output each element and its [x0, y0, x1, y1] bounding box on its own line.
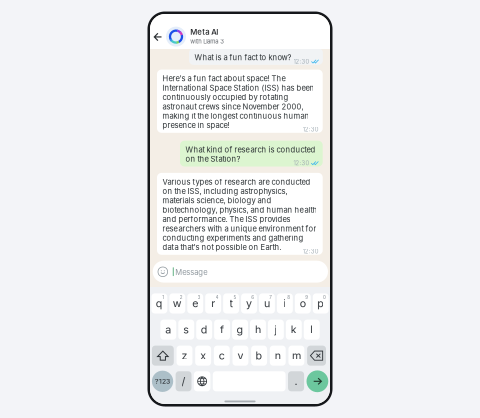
staticText: 2 [180, 295, 183, 300]
staticText: w [173, 297, 182, 310]
button[interactable]: r [205, 293, 221, 313]
button[interactable]: d [196, 320, 212, 340]
staticText: 12:30 [294, 58, 310, 65]
staticText: d [201, 323, 208, 336]
button[interactable]: h [250, 320, 266, 340]
button[interactable]: l [304, 320, 320, 340]
button[interactable]: x [195, 346, 211, 366]
button[interactable]: j [268, 320, 284, 340]
button[interactable]: Meta AI [150, 14, 330, 49]
button[interactable]: v [232, 346, 248, 366]
staticText: a [165, 323, 171, 336]
staticText: presence in space! [162, 121, 229, 130]
staticText: Here's a fun fact about space! The [162, 74, 285, 83]
button[interactable]: Send [306, 370, 328, 392]
staticText: materials science, biology and [162, 196, 271, 205]
button[interactable]: n [270, 346, 286, 366]
staticText: j [274, 323, 277, 336]
staticText: ?123 [155, 377, 170, 385]
staticText: 6 [251, 295, 254, 300]
staticText: s [183, 323, 189, 336]
staticText: m [292, 349, 301, 362]
staticText: v [237, 349, 243, 362]
button[interactable]: a [160, 320, 176, 340]
staticText: What kind of research is conducted [185, 145, 315, 154]
staticText: x [200, 349, 206, 362]
staticText: e [192, 297, 198, 310]
button[interactable]: y [241, 293, 257, 313]
button[interactable]: i [277, 293, 293, 313]
staticText: International Space Station (ISS) has be… [162, 83, 314, 92]
staticText: 3 [198, 295, 201, 300]
staticText: 8 [287, 295, 290, 300]
staticText: Meta AI [190, 27, 218, 37]
staticText: g [236, 323, 243, 336]
staticText: 1 [162, 295, 164, 300]
staticText: astronaut crews since November 2000, [162, 102, 303, 111]
button[interactable]: . [288, 371, 304, 391]
staticText: researchers with a unique environment fo… [162, 224, 316, 233]
button[interactable]: w [169, 293, 185, 313]
staticText: r [211, 297, 215, 310]
button[interactable]: f [214, 320, 230, 340]
staticText: 12:30 [303, 126, 319, 133]
staticText: / [181, 375, 185, 388]
button[interactable]: c [214, 346, 230, 366]
staticText: and performance. The ISS provides [162, 215, 290, 224]
button[interactable]: s [178, 320, 194, 340]
staticText: data that's not possible on Earth. [162, 243, 281, 252]
staticText: 0 [323, 295, 326, 300]
staticText: on the Station? [185, 154, 240, 164]
staticText: n [275, 349, 281, 362]
button[interactable]: Change keyboard [194, 371, 210, 391]
staticText: on the ISS, including astrophysics, [162, 187, 287, 196]
staticText: 9 [305, 295, 308, 300]
staticText: Various types of research are conducted [162, 177, 310, 186]
staticText: y [246, 297, 252, 310]
staticText: o [300, 297, 306, 310]
staticText: with Llama 3 [190, 38, 224, 45]
staticText: f [220, 323, 224, 336]
button[interactable]: o [295, 293, 311, 313]
button[interactable]: t [223, 293, 239, 313]
staticText: l [310, 323, 313, 336]
staticText: u [264, 297, 270, 310]
staticText: . [295, 375, 298, 388]
staticText: 12:30 [303, 248, 319, 255]
button[interactable]: ?123 [152, 371, 173, 392]
staticText: 4 [215, 295, 218, 300]
button[interactable]: e [187, 293, 203, 313]
button[interactable]: p [313, 293, 329, 313]
staticText: What is a fun fact to know? [194, 53, 291, 62]
button[interactable]: z [176, 346, 192, 366]
button[interactable]: b [251, 346, 267, 366]
staticText: continuously occupied by rotating [162, 93, 288, 102]
staticText: t [230, 297, 233, 310]
staticText: k [291, 323, 297, 336]
staticText: c [219, 349, 225, 362]
staticText: biotechnology, physics, and human health [162, 205, 317, 214]
staticText: conducting experiments and gathering [162, 233, 303, 243]
button[interactable]: Message [153, 261, 328, 283]
staticText: Message [175, 268, 207, 277]
staticText: making it the longest continuous human [162, 111, 309, 121]
staticText: 12:30 [293, 160, 309, 167]
staticText: 7 [269, 295, 272, 300]
button[interactable]: m [288, 346, 304, 366]
button[interactable]: q [151, 293, 167, 313]
button[interactable]: u [259, 293, 275, 313]
button[interactable]: Back [151, 30, 165, 44]
staticText: p [317, 297, 324, 310]
button[interactable]: Delete [307, 346, 326, 366]
staticText: h [255, 323, 261, 336]
staticText: i [283, 297, 286, 310]
button[interactable]: g [232, 320, 248, 340]
staticText: q [156, 297, 163, 310]
staticText: b [256, 349, 263, 362]
button[interactable]: k [286, 320, 302, 340]
button[interactable]: Shift [152, 346, 174, 366]
button[interactable]: / [176, 371, 191, 391]
staticText: 5 [233, 295, 236, 300]
